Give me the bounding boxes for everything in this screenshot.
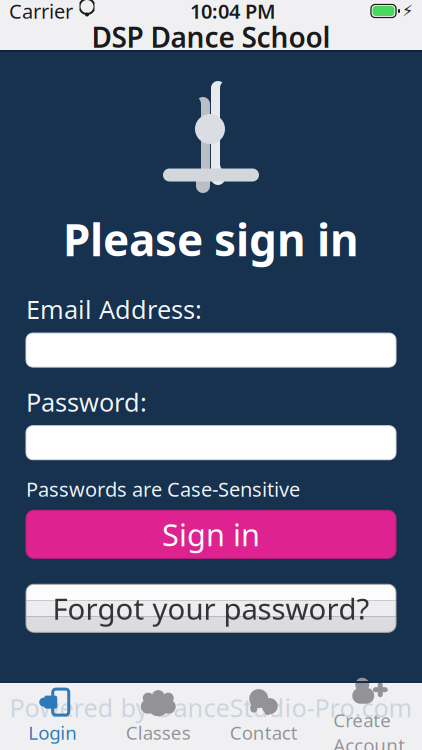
staticText: Password: xyxy=(26,385,147,419)
button[interactable]: Create Account xyxy=(316,685,422,745)
staticText: DSP Dance School xyxy=(91,18,330,56)
staticText: Classes xyxy=(126,720,191,745)
staticText: 10:04 PM xyxy=(190,0,276,24)
staticText: Carrier xyxy=(9,0,73,24)
staticText: Contact xyxy=(230,720,298,745)
staticText: Passwords are Case-Sensitive xyxy=(26,476,300,502)
staticText: Login xyxy=(28,720,77,745)
staticText: Powered by DanceStudio-Pro.com xyxy=(9,691,412,724)
button[interactable]: Login xyxy=(0,685,105,745)
staticText: Sign in xyxy=(162,514,260,555)
staticText: Forgot your password? xyxy=(52,589,369,628)
staticText: Email Address: xyxy=(26,292,202,326)
button[interactable]: Sign in xyxy=(26,510,396,558)
button[interactable]: Classes xyxy=(105,685,211,745)
button[interactable]: Forgot your password? xyxy=(26,584,396,632)
staticText: Please sign in xyxy=(63,210,359,268)
button[interactable]: Contact xyxy=(211,685,316,745)
staticText: ⚡︎ xyxy=(402,2,413,20)
staticText: Create Account xyxy=(333,708,405,750)
